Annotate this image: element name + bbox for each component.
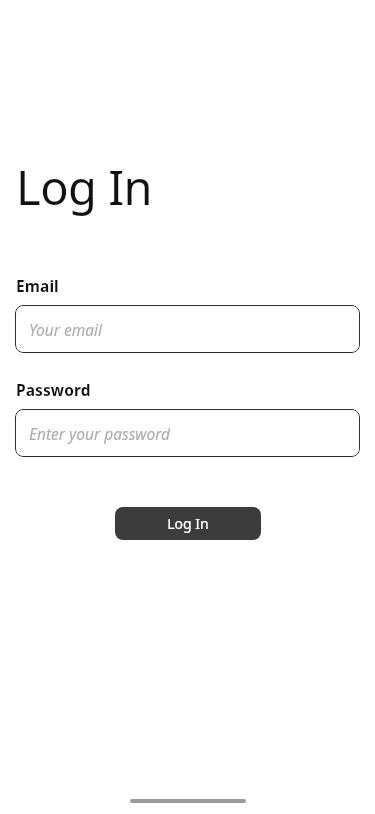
staticText: Email (16, 275, 59, 296)
button[interactable]: Your email (15, 305, 360, 353)
other: Home indicator (130, 799, 246, 803)
button[interactable]: Enter your password (15, 409, 360, 457)
staticText: Your email (29, 319, 103, 340)
staticText: Password (16, 379, 91, 400)
staticText: Log In (16, 155, 153, 219)
button[interactable]: Log In (115, 507, 261, 540)
staticText: Log In (167, 514, 209, 533)
staticText: Enter your password (29, 423, 171, 444)
